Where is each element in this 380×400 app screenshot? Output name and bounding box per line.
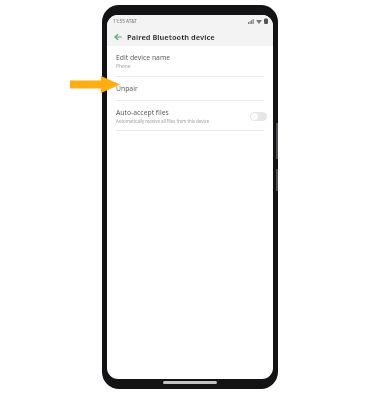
staticText: Auto-accept files (116, 108, 169, 117)
button[interactable]: Edit device name (107, 46, 273, 76)
staticText: Phone (116, 63, 131, 70)
button[interactable]: Auto-accept files (107, 101, 273, 130)
button[interactable]: Back (110, 29, 125, 44)
staticText: Paired Bluetooth device (127, 32, 215, 42)
staticText: Automatically receive all files from thi… (116, 118, 210, 124)
button[interactable]: Auto-accept files (250, 112, 267, 121)
staticText: Unpair (116, 84, 138, 93)
staticText: Edit device name (116, 53, 171, 62)
button[interactable]: Unpair (107, 77, 273, 100)
staticText: 11:55 AT&T (113, 18, 137, 24)
